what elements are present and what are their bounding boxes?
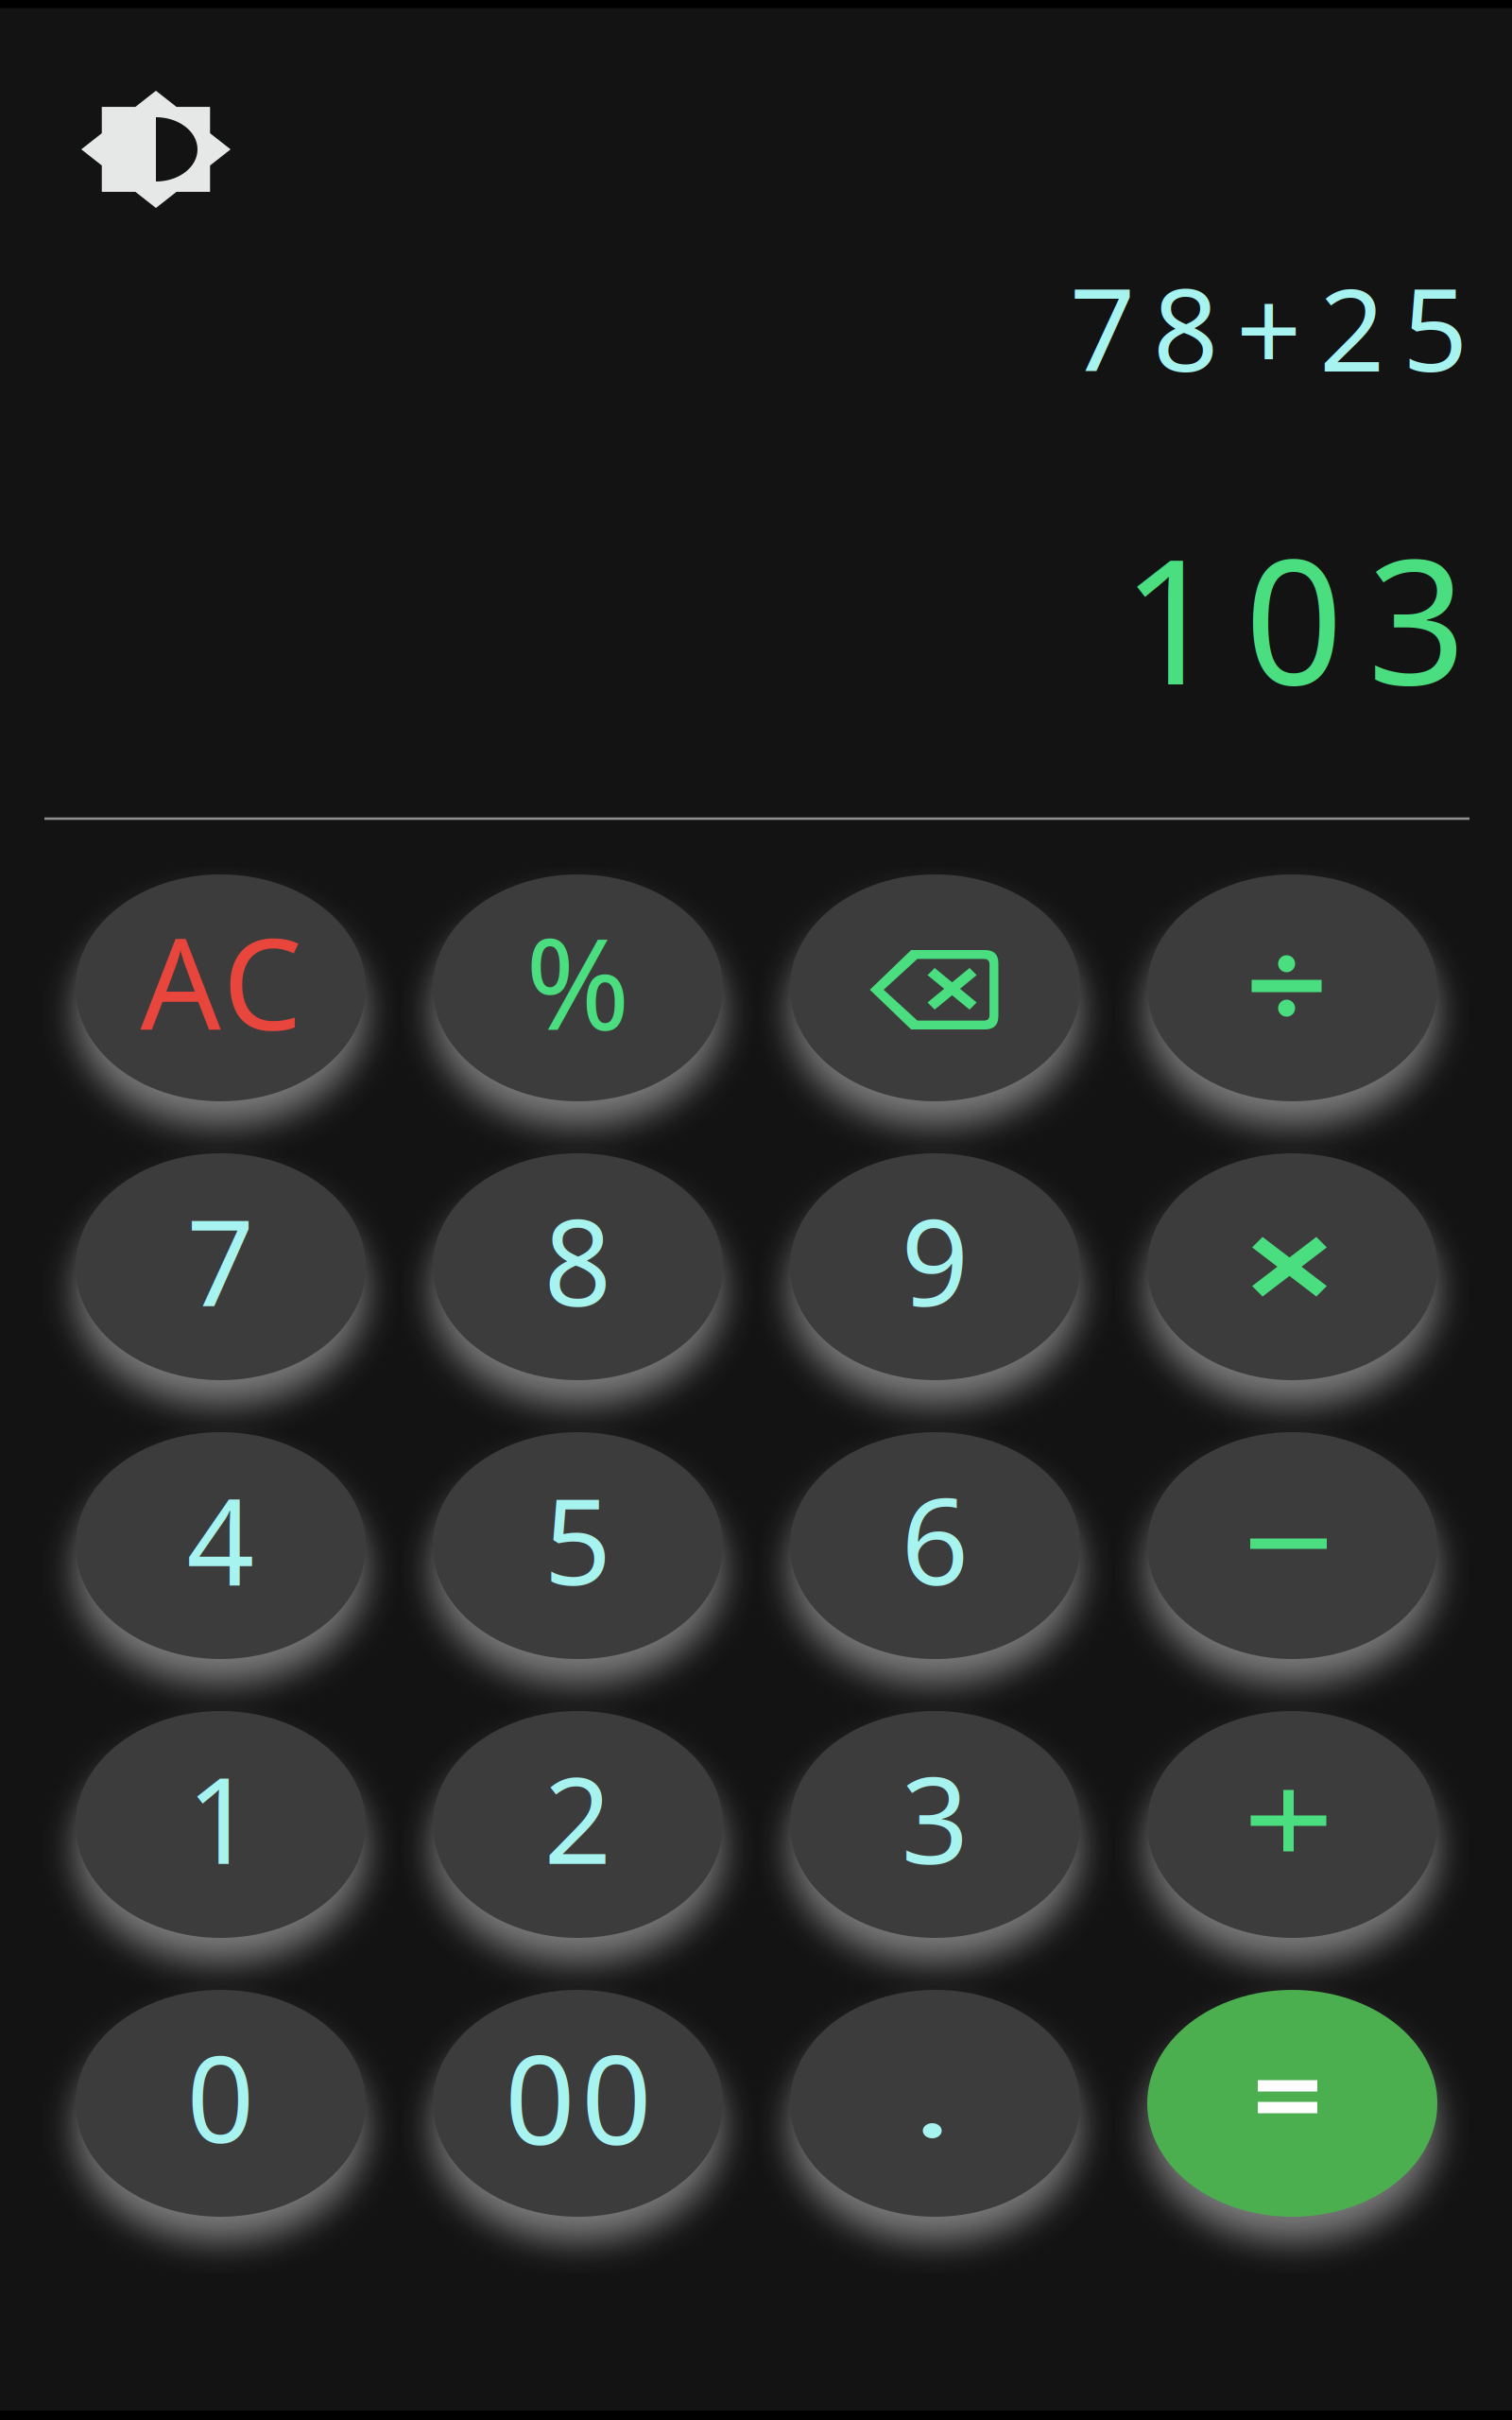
staticText: 00 <box>505 2015 652 2179</box>
button[interactable]: 2 <box>371 1650 784 1999</box>
staticText: 78+25 <box>1070 251 1468 403</box>
staticText: 7 <box>187 1181 255 1339</box>
staticText: AC <box>140 898 302 1065</box>
button[interactable]: 3 <box>729 1650 1142 1999</box>
staticText: 3 <box>901 1739 969 1896</box>
button[interactable]: % <box>371 813 784 1163</box>
staticText: 0 <box>187 2018 255 2175</box>
button[interactable]: Subtract <box>1086 1371 1499 1720</box>
staticText: % <box>525 898 630 1065</box>
button[interactable]: Toggle appearance <box>47 55 265 244</box>
button[interactable]: Add <box>1086 1650 1499 1999</box>
staticText: 4 <box>187 1460 255 1618</box>
button[interactable]: 5 <box>371 1371 784 1720</box>
staticText: 8 <box>544 1181 612 1339</box>
staticText: 103 <box>1122 503 1466 732</box>
button[interactable]: 1 <box>14 1650 427 1999</box>
button[interactable]: 8 <box>371 1092 784 1442</box>
button[interactable]: 7 <box>14 1092 427 1442</box>
button[interactable]: Divide <box>1086 813 1499 1163</box>
button[interactable]: 0 <box>14 1928 427 2278</box>
button[interactable]: Delete <box>729 813 1142 1163</box>
button[interactable]: Equals <box>1086 1928 1499 2278</box>
button[interactable]: 00 <box>371 1928 784 2278</box>
staticText: 2 <box>544 1739 612 1896</box>
staticText: 1 <box>187 1739 255 1896</box>
staticText: 9 <box>901 1181 969 1339</box>
staticText: 6 <box>901 1460 969 1618</box>
button[interactable]: Multiply <box>1086 1092 1499 1442</box>
button[interactable]: Decimal point <box>729 1928 1142 2278</box>
staticText: 5 <box>544 1460 612 1618</box>
button[interactable]: 4 <box>14 1371 427 1720</box>
button[interactable]: 6 <box>729 1371 1142 1720</box>
button[interactable]: AC <box>14 813 427 1163</box>
button[interactable]: 9 <box>729 1092 1142 1442</box>
